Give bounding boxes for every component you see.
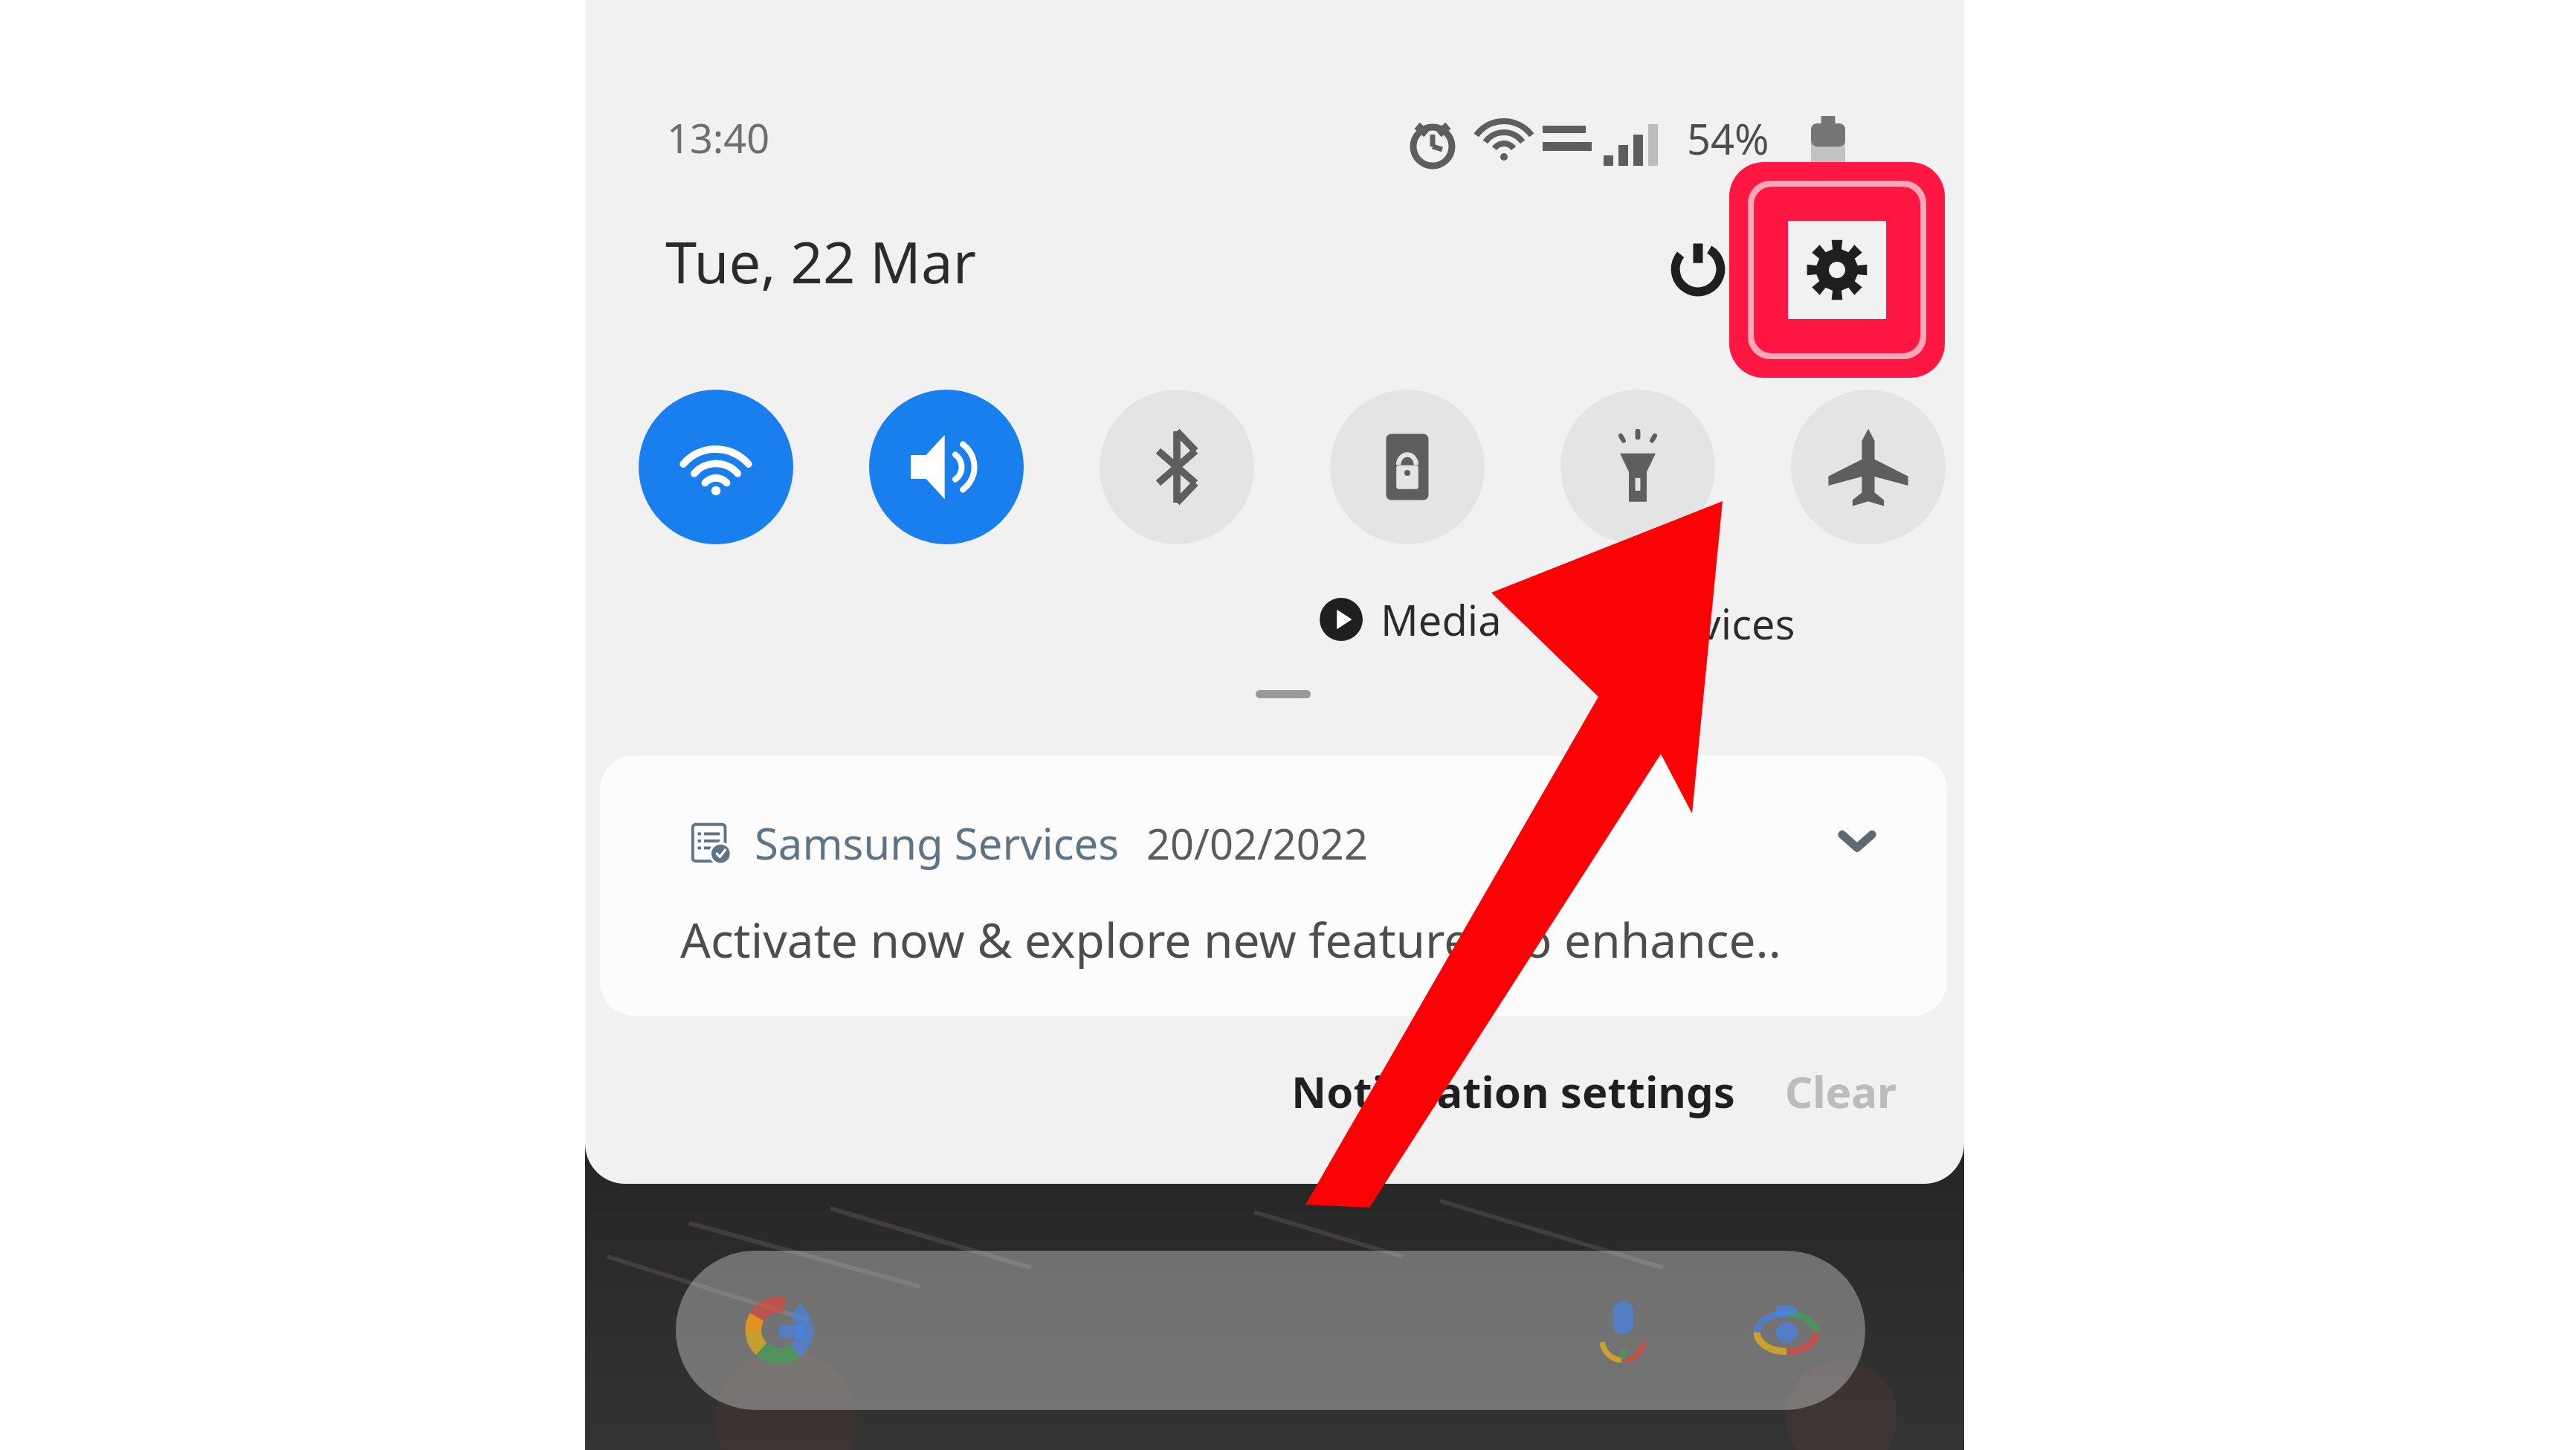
button[interactable]: Notification settings [1291, 1062, 1735, 1121]
staticText: Devices [1647, 595, 1795, 651]
staticText: Activate now & explore new features to e… [680, 907, 1781, 972]
staticText: Clear [1785, 1062, 1897, 1121]
staticText: Samsung Services [755, 813, 1120, 872]
button[interactable]: Flashlight [1560, 390, 1715, 544]
button[interactable]: Devices [1647, 595, 1795, 651]
staticText: 54% [1687, 110, 1769, 167]
button[interactable]: Power off [1650, 217, 1746, 314]
button[interactable]: Expand notification [1816, 799, 1898, 880]
staticText: 20/02/2022 [1146, 815, 1368, 871]
button[interactable]: Flight mode [1791, 390, 1946, 544]
button[interactable]: Samsung Services [600, 755, 1947, 1016]
button[interactable]: Settings button highlighted [1729, 162, 1945, 378]
button[interactable]: Media [1320, 591, 1502, 648]
staticText: 13:40 [667, 110, 770, 165]
button[interactable]: Settings [1749, 217, 1846, 314]
button[interactable]: Bluetooth [1100, 390, 1254, 544]
button[interactable]: Wi-Fi [639, 390, 793, 544]
staticText: Media [1381, 591, 1502, 648]
staticText: Tue, 22 Mar [665, 223, 977, 300]
button[interactable]: SIM card lock [1330, 390, 1485, 544]
button[interactable]: Clear [1785, 1062, 1897, 1121]
staticText: Notification settings [1291, 1062, 1735, 1121]
button[interactable]: Search with Google [676, 1251, 1865, 1410]
button[interactable]: Sound [869, 390, 1024, 544]
